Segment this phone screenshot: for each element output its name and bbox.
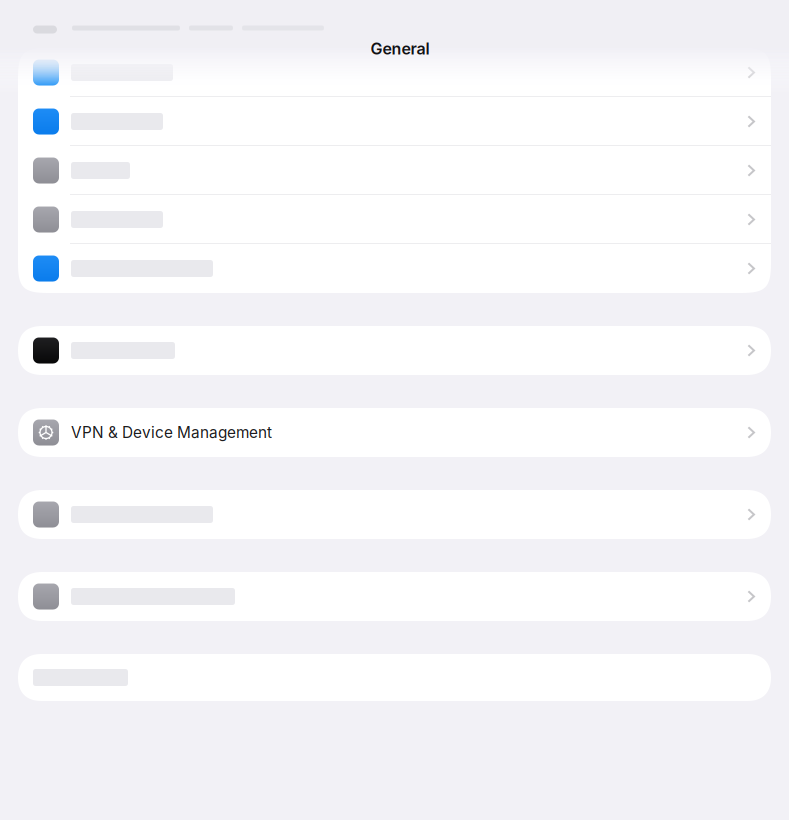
staticText: General — [370, 39, 429, 58]
button[interactable]: Shut Down — [18, 654, 771, 701]
button[interactable]: Settings item — [18, 97, 771, 146]
button[interactable]: VPN & Device Management — [18, 408, 771, 457]
button[interactable]: Settings item — [18, 48, 771, 97]
button[interactable]: Settings item — [18, 146, 771, 195]
button[interactable]: Settings item — [18, 244, 771, 293]
button[interactable]: Settings item — [18, 490, 771, 539]
button[interactable]: Settings item — [18, 195, 771, 244]
staticText: VPN & Device Management — [71, 423, 272, 442]
button[interactable]: Settings item — [18, 572, 771, 621]
button[interactable]: Settings item — [18, 326, 771, 375]
